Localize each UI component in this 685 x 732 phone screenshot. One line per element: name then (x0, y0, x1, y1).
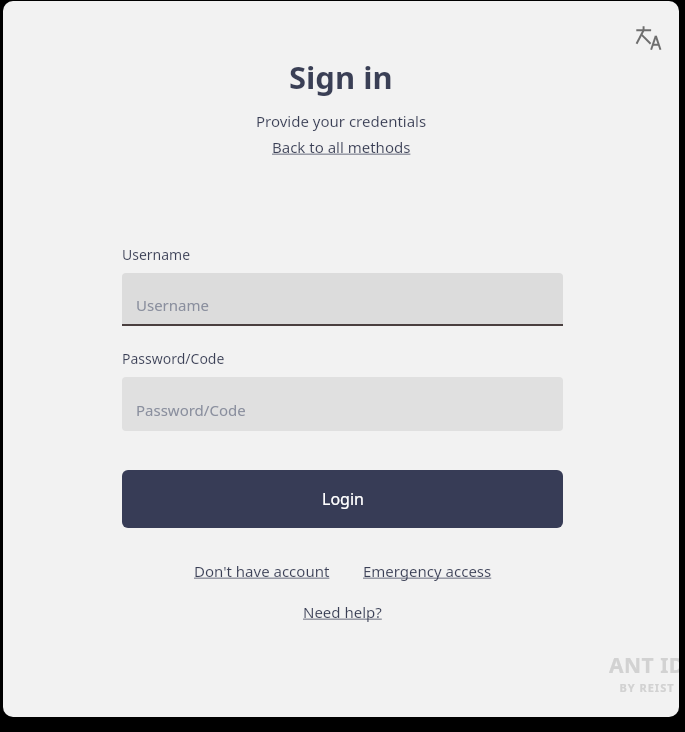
staticText: Login (322, 488, 364, 510)
staticText: Emergency access (363, 561, 492, 581)
staticText: Password/Code (122, 349, 225, 368)
staticText: Back to all methods (272, 137, 411, 157)
staticText: Username (136, 295, 209, 315)
staticText: Sign in (289, 56, 393, 98)
button[interactable]: Change language (629, 19, 667, 57)
button[interactable]: Need help? (303, 602, 382, 622)
staticText: Don't have account (194, 561, 330, 581)
button[interactable]: Username (122, 273, 563, 326)
button[interactable]: Emergency access (363, 561, 492, 581)
button[interactable]: Back to all methods (272, 137, 411, 157)
button[interactable]: Don't have account (194, 561, 330, 581)
button[interactable]: Login (122, 470, 563, 528)
staticText: Provide your credentials (256, 111, 427, 131)
button[interactable]: Password/Code (122, 377, 563, 431)
staticText: Username (122, 245, 191, 264)
staticText: BY REIST (619, 680, 675, 695)
staticText: ANT ID (609, 651, 679, 680)
staticText: Need help? (303, 602, 382, 622)
staticText: Password/Code (136, 400, 246, 420)
